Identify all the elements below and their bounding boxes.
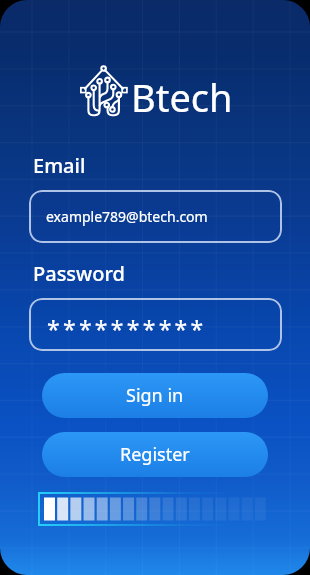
staticText: Email	[33, 152, 86, 179]
button[interactable]: Password input	[29, 298, 282, 351]
staticText: Sign in	[126, 383, 184, 408]
staticText: example789@btech.com	[46, 207, 208, 226]
button[interactable]: Email input	[29, 190, 282, 243]
staticText: Register	[120, 442, 190, 467]
button[interactable]: Sign in	[42, 373, 268, 418]
other: Btech logo	[81, 66, 127, 117]
staticText: * * * * * * * * * *	[47, 313, 202, 344]
staticText: Password	[33, 260, 125, 287]
button[interactable]: Register	[42, 432, 268, 477]
other: Loading progress	[38, 492, 274, 526]
staticText: Btech	[131, 71, 233, 123]
